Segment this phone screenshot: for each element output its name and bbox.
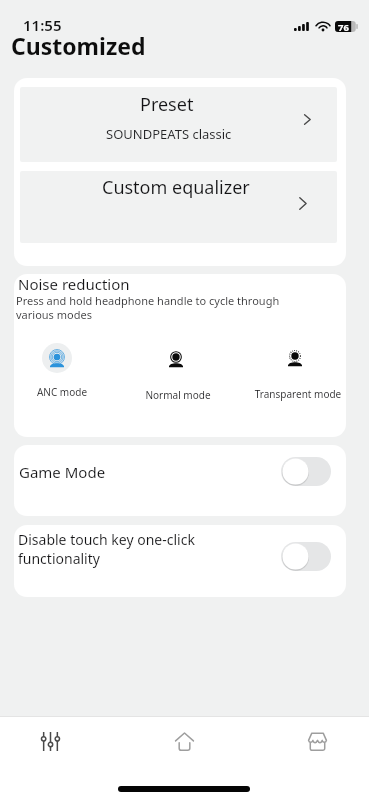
button[interactable]: Preset xyxy=(20,87,337,162)
staticText: Game Mode xyxy=(19,462,106,482)
button[interactable]: Store xyxy=(287,721,347,761)
button[interactable]: Toggle xyxy=(281,457,331,486)
staticText: Customized xyxy=(11,30,146,61)
staticText: 11:55 xyxy=(23,15,62,35)
staticText: SOUNDPEATS classic xyxy=(106,125,232,143)
button[interactable]: Transparent mode xyxy=(280,342,310,372)
staticText: Press and hold headphone handle to cycle… xyxy=(16,293,280,322)
button[interactable]: Normal mode xyxy=(161,343,191,373)
staticText: Noise reduction xyxy=(18,274,130,294)
staticText: Disable touch key one-click functionalit… xyxy=(18,530,195,568)
button[interactable]: Home xyxy=(154,721,214,761)
button[interactable]: Toggle xyxy=(281,542,331,571)
staticText: Preset xyxy=(140,92,194,117)
button[interactable]: Custom equalizer xyxy=(20,171,337,243)
button[interactable]: Equalizer xyxy=(20,721,80,761)
staticText: Transparent mode xyxy=(248,387,346,401)
staticText: ANC mode xyxy=(26,385,98,399)
button[interactable]: Disable touch key one-click functionalit… xyxy=(14,525,346,597)
staticText: Custom equalizer xyxy=(102,175,250,200)
staticText: Normal mode xyxy=(138,388,218,402)
button[interactable]: ANC mode xyxy=(42,343,72,373)
staticText: 76 xyxy=(338,21,349,32)
button[interactable]: Game Mode xyxy=(14,445,346,516)
